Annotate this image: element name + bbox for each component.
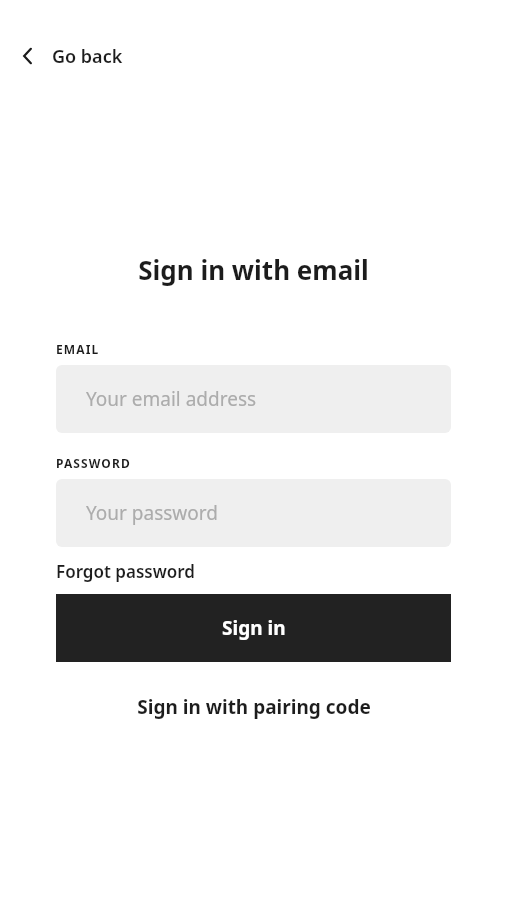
button[interactable]: Your email address (56, 365, 451, 433)
button[interactable]: Go back (0, 36, 139, 76)
staticText: Your password (86, 500, 218, 526)
staticText: Sign in (222, 615, 286, 641)
button[interactable]: Forgot password (56, 560, 195, 583)
staticText: Go back (52, 44, 123, 69)
staticText: Forgot password (56, 560, 195, 583)
staticText: Sign in with email (0, 252, 507, 287)
staticText: PASSWORD (56, 455, 131, 471)
button[interactable]: Sign in (56, 594, 451, 662)
staticText: Sign in with pairing code (137, 694, 371, 720)
other: Go back (16, 44, 40, 68)
staticText: EMAIL (56, 341, 100, 357)
button[interactable]: Sign in with pairing code (56, 685, 451, 729)
button[interactable]: Your password (56, 479, 451, 547)
staticText: Your email address (86, 386, 257, 412)
